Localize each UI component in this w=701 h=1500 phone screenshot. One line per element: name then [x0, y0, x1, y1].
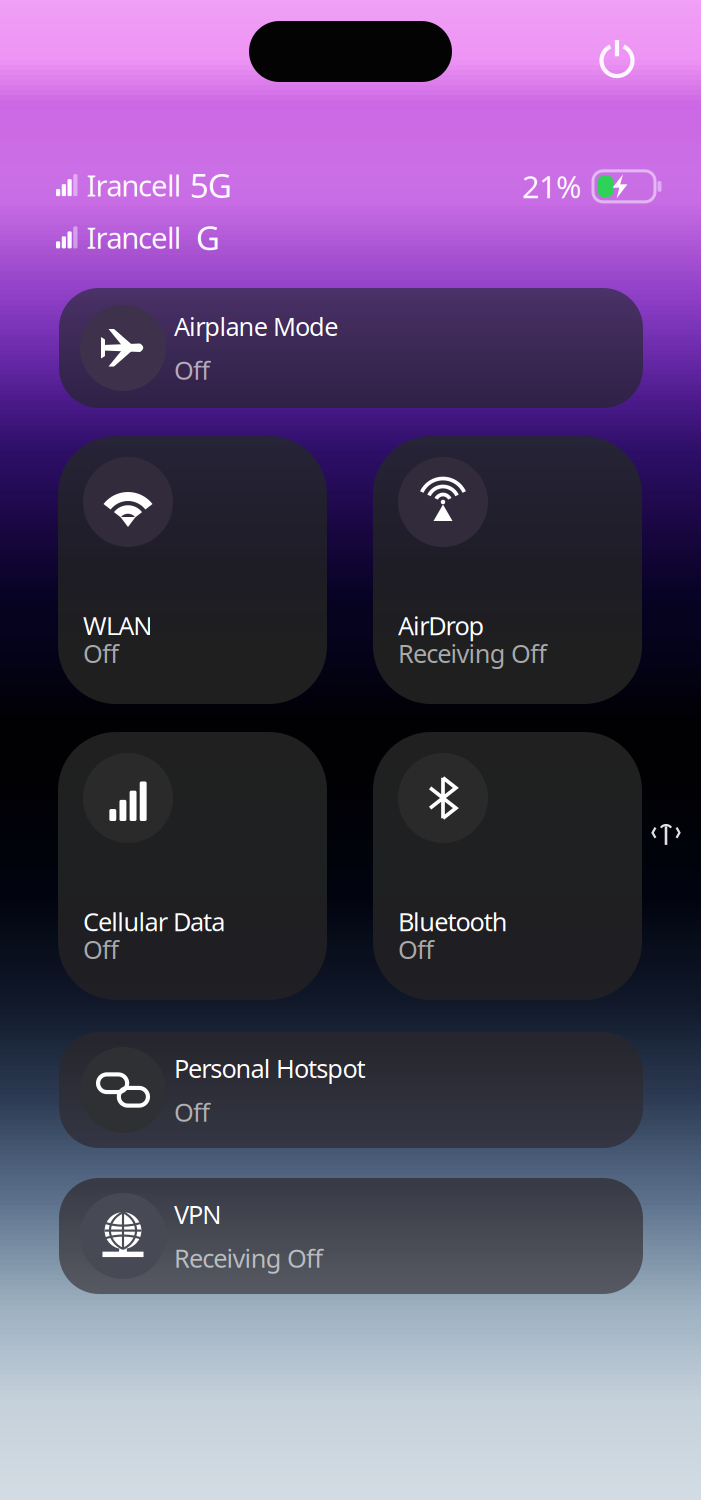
button[interactable]: Cellular Data — [58, 732, 327, 1000]
staticText: Receiving Off — [398, 636, 547, 670]
staticText: Off — [174, 353, 210, 387]
staticText: AirDrop — [398, 609, 485, 642]
staticText: WLAN — [83, 609, 152, 642]
staticText: G — [196, 215, 220, 260]
staticText: 5G — [190, 163, 232, 207]
staticText: Off — [83, 932, 119, 966]
staticText: Bluetooth — [398, 905, 508, 938]
staticText: Off — [83, 636, 119, 670]
button[interactable]: Personal Hotspot — [59, 1032, 643, 1148]
button[interactable]: Bluetooth — [373, 732, 642, 1000]
staticText: Off — [398, 932, 434, 966]
button[interactable]: VPN — [59, 1178, 643, 1294]
button[interactable]: Airplane Mode — [59, 288, 643, 408]
button[interactable]: AirDrop — [373, 436, 642, 704]
staticText: Airplane Mode — [174, 309, 338, 343]
button[interactable]: Power — [587, 28, 647, 88]
staticText: Irancell — [86, 166, 182, 205]
staticText: Receiving Off — [174, 1241, 323, 1275]
button[interactable]: WLAN — [58, 436, 327, 704]
staticText: Irancell — [86, 218, 182, 257]
staticText: VPN — [174, 1197, 221, 1231]
staticText: Personal Hotspot — [174, 1051, 365, 1085]
staticText: Cellular Data — [83, 905, 225, 938]
staticText: 21% — [522, 166, 581, 207]
staticText: Off — [174, 1095, 210, 1129]
